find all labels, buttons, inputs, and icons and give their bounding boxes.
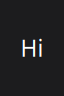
staticText: Hi	[20, 33, 43, 63]
